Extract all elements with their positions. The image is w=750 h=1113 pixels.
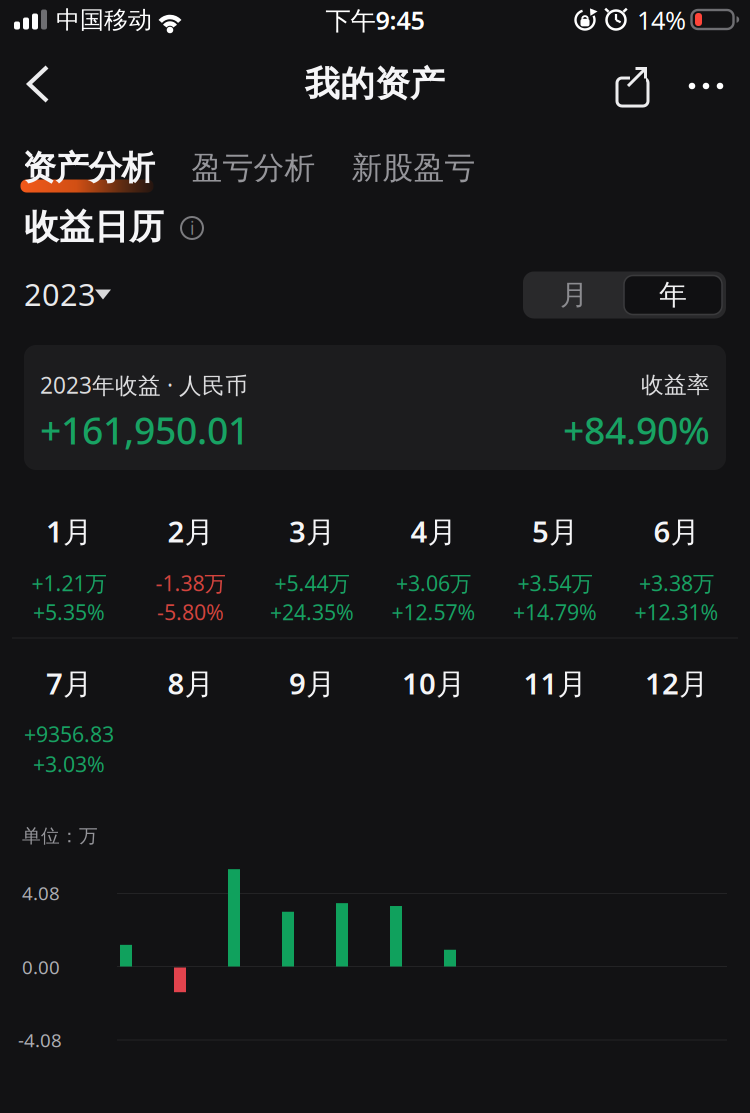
staticText: 收益率 [641,371,710,399]
staticText: +1.21万 [31,569,106,597]
staticText: 收益日历 [24,206,164,248]
staticText: 3月 [289,511,335,550]
staticText: +3.38万 [639,569,714,597]
staticText: +12.31% [634,598,718,626]
button[interactable]: 月 [525,271,622,318]
staticText: 8月 [167,663,213,702]
staticText: 中国移动 [56,5,152,35]
staticText: +5.44万 [274,569,349,597]
staticText: 单位：万 [22,824,98,847]
staticText: 10月 [402,663,465,702]
staticText: -4.08 [18,1028,62,1052]
button[interactable]: Info [175,211,209,245]
staticText: 7月 [46,663,92,702]
staticText: 新股盈亏 [351,149,475,187]
staticText: +84.90% [563,405,710,455]
staticText: +14.79% [513,598,597,626]
staticText: 4月 [410,511,456,550]
staticText: 12月 [645,663,708,702]
staticText: 盈亏分析 [191,149,315,187]
staticText: +3.54万 [517,569,592,597]
staticText: 11月 [523,663,586,702]
staticText: 2023年收益 · 人民币 [40,370,248,400]
staticText: 5月 [532,511,578,550]
button[interactable]: Back [23,58,57,110]
button[interactable]: 盈亏分析 [183,142,323,194]
button[interactable]: 新股盈亏 [343,142,483,194]
staticText: 6月 [653,511,699,550]
staticText: 下午9:45 [325,3,424,37]
staticText: 1月 [46,511,92,550]
staticText: i [190,216,194,239]
staticText: +24.35% [270,598,354,626]
staticText: +12.57% [391,598,475,626]
button[interactable]: 资产分析 [18,142,158,194]
staticText: 年 [659,278,687,312]
button[interactable]: 年 [624,275,722,314]
staticText: 0.00 [22,955,60,979]
staticText: +3.03% [33,750,105,778]
button[interactable]: More [684,74,728,98]
staticText: 9月 [289,663,335,702]
button[interactable]: Share [612,63,656,107]
staticText: 2023 [24,274,96,314]
staticText: -1.38万 [155,569,225,597]
staticText: +5.35% [33,598,105,626]
staticText: 我的资产 [305,63,445,105]
staticText: 资产分析 [22,147,154,188]
staticText: 14% [637,3,686,37]
staticText: +161,950.01 [40,405,249,455]
staticText: 4.08 [22,881,60,905]
staticText: +3.06万 [396,569,471,597]
staticText: +9356.83 [24,720,114,748]
staticText: 月 [560,278,588,312]
button[interactable]: Year picker [24,270,116,318]
staticText: -5.80% [157,598,224,626]
staticText: 2月 [167,511,213,550]
